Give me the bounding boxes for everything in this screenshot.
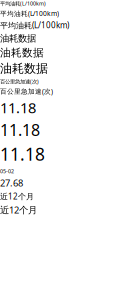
staticText: 百公里急加速(次) [0, 78, 39, 85]
staticText: 11.18 [0, 119, 40, 140]
staticText: 油耗数据 [0, 61, 48, 76]
staticText: 百公里急加速(次) [0, 87, 53, 96]
staticText: 近12个月 [0, 191, 34, 202]
staticText: 平均油耗(L/100km) [0, 9, 59, 18]
staticText: 平均油耗(L/100km) [0, 0, 46, 7]
staticText: 05-02 [0, 167, 14, 175]
staticText: 11.18 [0, 98, 36, 117]
staticText: 11.18 [0, 142, 45, 165]
staticText: 平均油耗(L/100km) [0, 20, 69, 30]
staticText: 27.68 [0, 177, 23, 189]
staticText: 油耗数据 [0, 33, 36, 44]
staticText: 油耗数据 [0, 46, 44, 59]
staticText: 近12个月 [0, 204, 37, 216]
